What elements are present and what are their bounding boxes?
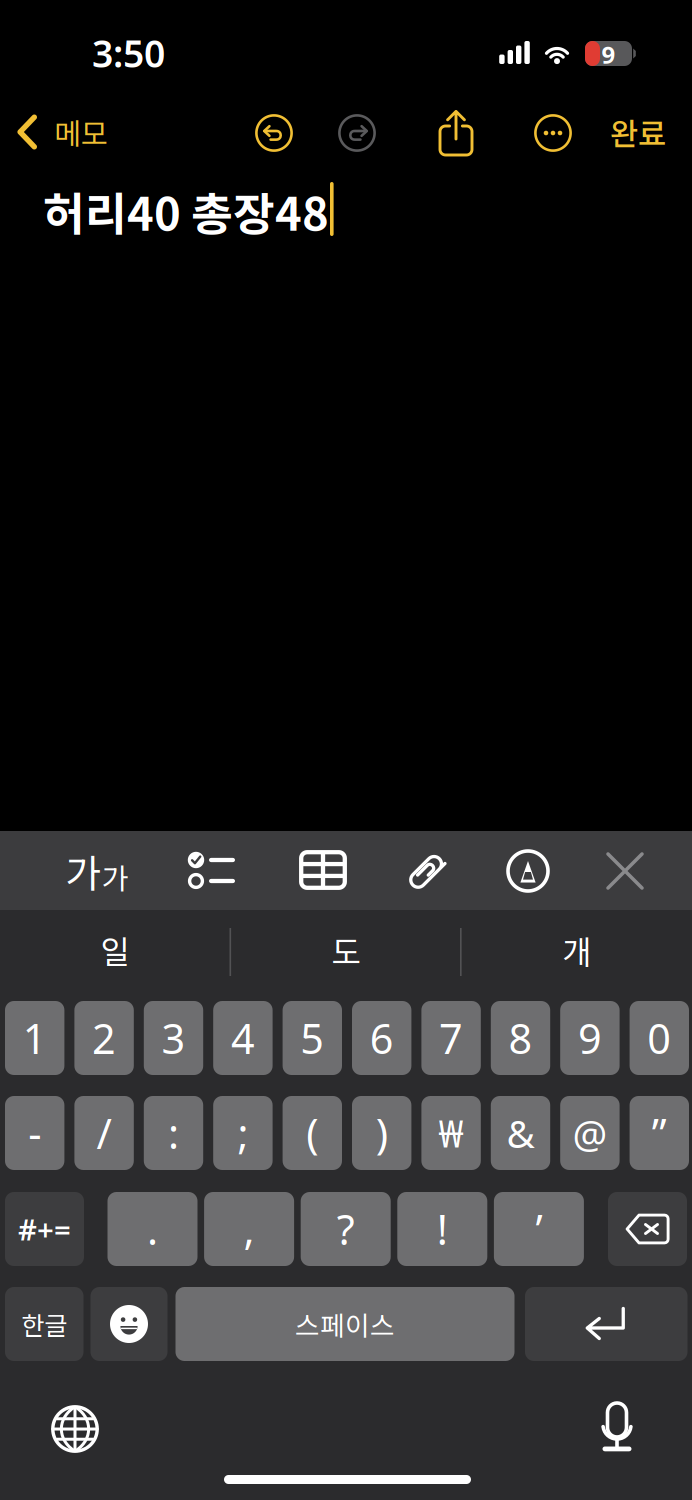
button[interactable]: 한글: [5, 1287, 83, 1361]
staticText: :: [168, 1106, 179, 1160]
staticText: 완료: [610, 110, 666, 154]
staticText: 한글: [21, 1306, 67, 1342]
button[interactable]: 0: [630, 1001, 689, 1075]
staticText: 메모: [54, 111, 108, 153]
staticText: 3:50: [92, 28, 165, 78]
button[interactable]: Attach: [404, 846, 450, 896]
staticText: 허리40 총장48: [43, 178, 329, 244]
staticText: 4: [231, 1011, 255, 1065]
button[interactable]: Share: [437, 108, 475, 157]
staticText: 가: [101, 855, 128, 898]
button[interactable]: ”: [630, 1096, 689, 1170]
button[interactable]: 5: [283, 1001, 342, 1075]
staticText: 개: [562, 927, 591, 973]
button[interactable]: More: [534, 114, 572, 152]
button[interactable]: 6: [352, 1001, 411, 1075]
button[interactable]: Undo: [255, 114, 293, 152]
staticText: ₩: [439, 1108, 464, 1158]
staticText: ;: [237, 1106, 248, 1160]
staticText: 5: [300, 1011, 324, 1065]
button[interactable]: #+=: [5, 1192, 84, 1266]
staticText: 3: [161, 1011, 185, 1065]
staticText: 1: [23, 1011, 47, 1065]
button[interactable]: (: [283, 1096, 342, 1170]
button[interactable]: .: [107, 1192, 197, 1266]
staticText: 6: [370, 1011, 394, 1065]
button[interactable]: Return: [525, 1287, 687, 1361]
button[interactable]: 7: [421, 1001, 481, 1075]
button[interactable]: :: [144, 1096, 203, 1170]
button[interactable]: 완료: [603, 110, 673, 154]
button[interactable]: Redo: [338, 114, 376, 152]
staticText: 가: [65, 843, 101, 899]
staticText: 2: [92, 1011, 116, 1065]
button[interactable]: @: [560, 1096, 620, 1170]
staticText: #+=: [18, 1209, 71, 1248]
staticText: 9: [578, 1011, 602, 1065]
button[interactable]: -: [5, 1096, 64, 1170]
button[interactable]: ₩: [421, 1096, 481, 1170]
staticText: !: [437, 1202, 448, 1256]
staticText: 0: [647, 1011, 671, 1065]
staticText: ,: [244, 1202, 255, 1256]
button[interactable]: /: [74, 1096, 134, 1170]
button[interactable]: ,: [204, 1192, 294, 1266]
staticText: &: [506, 1107, 534, 1159]
button[interactable]: ’: [494, 1192, 584, 1266]
staticText: (: [306, 1106, 318, 1160]
button[interactable]: Markup: [506, 849, 550, 893]
button[interactable]: !: [397, 1192, 487, 1266]
staticText: /: [97, 1106, 112, 1160]
button[interactable]: 3: [144, 1001, 203, 1075]
button[interactable]: 일: [0, 910, 230, 990]
staticText: ?: [337, 1202, 355, 1256]
button[interactable]: Close keyboard: [606, 852, 644, 890]
staticText: 스페이스: [295, 1305, 395, 1343]
button[interactable]: 4: [213, 1001, 273, 1075]
button[interactable]: 1: [5, 1001, 64, 1075]
staticText: @: [572, 1107, 607, 1159]
button[interactable]: 도: [230, 910, 462, 990]
staticText: 일: [100, 927, 129, 973]
button[interactable]: 9: [560, 1001, 620, 1075]
button[interactable]: Emoji: [90, 1287, 167, 1361]
button[interactable]: ?: [301, 1192, 391, 1266]
button[interactable]: Backspace: [608, 1192, 687, 1266]
staticText: 8: [508, 1011, 532, 1065]
button[interactable]: Next keyboard: [51, 1405, 99, 1453]
button[interactable]: 2: [74, 1001, 134, 1075]
button[interactable]: 개: [462, 910, 692, 990]
staticText: 도: [331, 927, 360, 973]
staticText: -: [28, 1106, 41, 1160]
button[interactable]: ): [352, 1096, 411, 1170]
button[interactable]: Dictate: [598, 1403, 636, 1455]
staticText: 9: [601, 39, 615, 70]
button[interactable]: 스페이스: [175, 1287, 514, 1361]
button[interactable]: Checklist: [187, 851, 235, 891]
button[interactable]: Table: [299, 850, 347, 890]
staticText: ”: [652, 1106, 667, 1160]
button[interactable]: &: [491, 1096, 550, 1170]
staticText: 7: [439, 1011, 463, 1065]
staticText: ): [376, 1106, 388, 1160]
button[interactable]: ;: [213, 1096, 273, 1170]
staticText: .: [147, 1202, 158, 1256]
staticText: ’: [535, 1202, 542, 1256]
button[interactable]: Text size: [66, 850, 128, 892]
button[interactable]: 메모: [8, 104, 128, 160]
button[interactable]: 8: [491, 1001, 550, 1075]
